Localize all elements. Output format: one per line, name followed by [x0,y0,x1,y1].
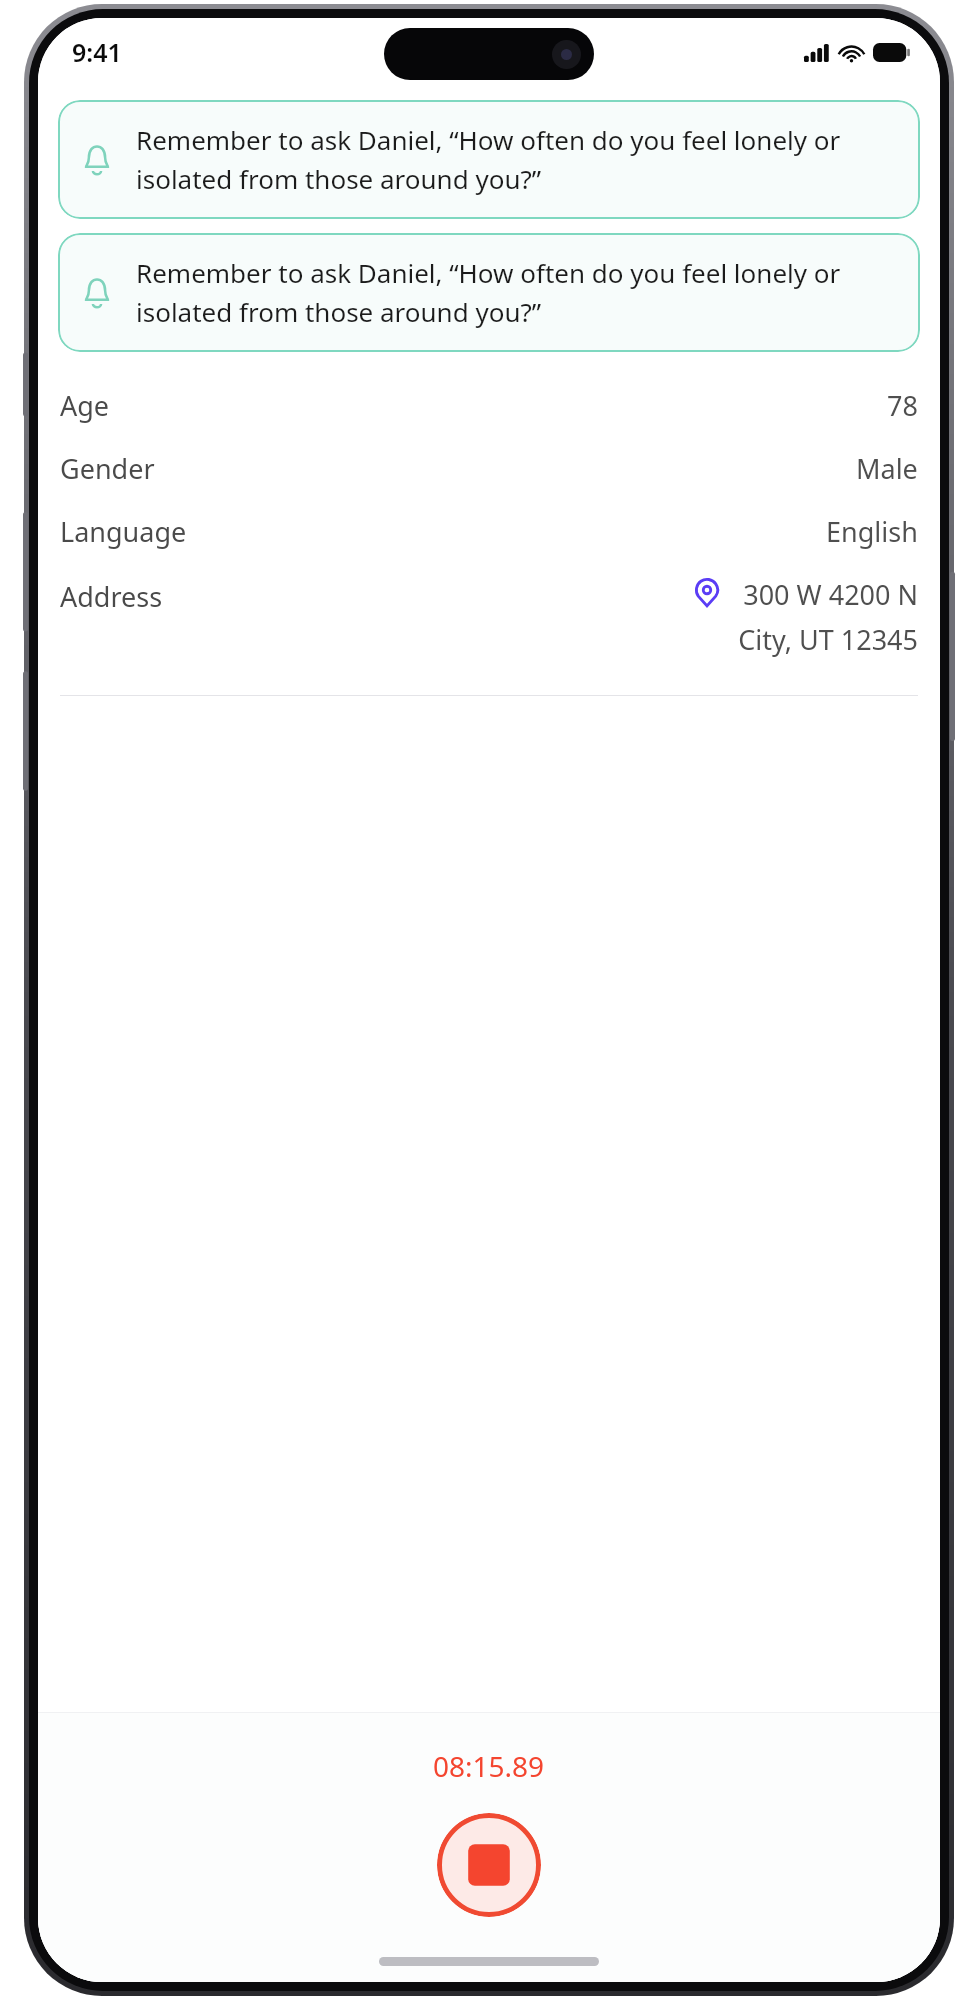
button[interactable]: Age [60,374,918,437]
button[interactable]: Gender [60,437,918,500]
staticText: Remember to ask Daniel, “How often do yo… [136,255,902,330]
other: Location [692,578,722,608]
staticText: Address [60,578,163,615]
staticText: 9:41 [72,35,122,69]
staticText: Personal Information [124,246,445,287]
staticText: Remember to ask Daniel, “How often do yo… [136,122,902,197]
button[interactable]: Stop recording [437,1813,541,1917]
staticText: Gender [60,450,155,487]
staticText: 08:15.89 [433,1747,545,1785]
staticText: 78 [887,387,918,424]
button[interactable]: Language [60,500,918,563]
staticText: English [826,513,918,550]
other: Reminder [80,276,114,310]
staticText: Male [856,450,918,487]
other: Reminder [80,143,114,177]
button[interactable]: Reminder [58,233,920,352]
button[interactable]: Reminder [58,100,920,219]
button[interactable]: Address [60,563,918,671]
staticText: Language [60,513,187,550]
staticText: Daniel Matthews [146,112,408,154]
staticText: City, UT 12345 [738,621,918,658]
staticText: Age [60,387,110,424]
staticText: 300 W 4200 N [743,576,918,613]
